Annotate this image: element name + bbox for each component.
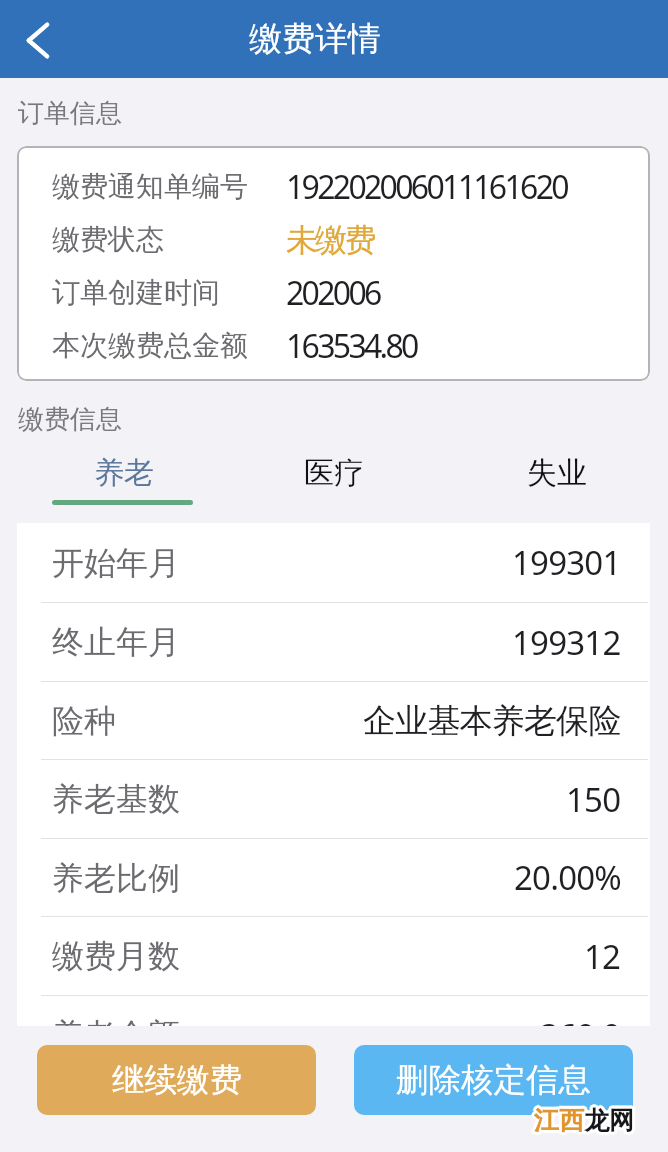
staticText: 失业 <box>527 454 587 492</box>
staticText: 江西龙网 <box>533 1106 633 1137</box>
staticText: 医疗 <box>304 454 364 492</box>
button[interactable]: 养老基数 <box>52 760 615 838</box>
button[interactable]: 终止年月 <box>52 603 615 681</box>
staticText: 江西龙网 <box>536 1105 636 1136</box>
staticText: 20.00% <box>514 855 621 900</box>
staticText: 江西 <box>534 1105 584 1136</box>
staticText: 江西龙网 <box>532 1107 632 1138</box>
staticText: 缴费详情 <box>249 18 381 60</box>
staticText: 江西龙网 <box>536 1107 636 1138</box>
staticText: 缴费月数 <box>52 936 180 976</box>
staticText: 江西龙网 <box>533 1105 633 1136</box>
staticText: 江西龙网 <box>532 1105 632 1136</box>
staticText: 江西龙网 <box>534 1106 634 1137</box>
staticText: 删除核定信息 <box>396 1060 591 1101</box>
staticText: 江西龙网 <box>531 1105 631 1136</box>
button[interactable]: 开始年月 <box>52 523 615 602</box>
staticText: 养老比例 <box>52 858 180 898</box>
staticText: 江西龙网 <box>535 1105 635 1136</box>
button[interactable]: 继续缴费 <box>37 1045 316 1115</box>
button[interactable]: 失业 <box>445 449 668 523</box>
staticText: 江西龙网 <box>536 1103 636 1134</box>
staticText: 江西龙网 <box>536 1106 636 1137</box>
staticText: 江西龙网 <box>532 1104 632 1135</box>
staticText: 江西龙网 <box>534 1102 634 1133</box>
staticText: 163534.80 <box>286 324 417 368</box>
staticText: 养老基数 <box>52 779 180 819</box>
staticText: 未缴费 <box>286 220 374 260</box>
button[interactable]: 养老金额 <box>52 996 615 1026</box>
staticText: 缴费通知单编号 <box>52 169 284 204</box>
staticText: 养老金额 <box>52 1015 180 1026</box>
staticText: 江西龙网 <box>532 1103 632 1134</box>
staticText: 终止年月 <box>52 622 180 662</box>
staticText: 江西龙网 <box>534 1107 634 1138</box>
staticText: 江西龙网 <box>534 1104 634 1135</box>
staticText: 江西龙网 <box>535 1104 635 1135</box>
staticText: 江西龙网 <box>535 1106 635 1137</box>
button[interactable]: Back <box>8 9 68 69</box>
staticText: 江西龙网 <box>535 1107 635 1138</box>
staticText: 继续缴费 <box>112 1060 242 1101</box>
staticText: 199301 <box>512 540 621 585</box>
button[interactable]: 缴费月数 <box>52 917 615 995</box>
staticText: 养老 <box>94 454 154 492</box>
staticText: 企业基本养老保险 <box>363 700 621 742</box>
button[interactable]: 删除核定信息 <box>354 1045 633 1115</box>
staticText: 江西龙网 <box>532 1106 632 1137</box>
staticText: 360.0 <box>540 1013 621 1026</box>
staticText: 150 <box>566 777 621 822</box>
button[interactable]: 险种 <box>52 682 615 759</box>
staticText: 199312 <box>512 620 621 665</box>
staticText: 订单创建时间 <box>52 275 284 310</box>
staticText: 江西龙网 <box>536 1104 636 1135</box>
button[interactable]: 养老比例 <box>52 839 615 916</box>
staticText: 江西龙网 <box>533 1103 633 1134</box>
staticText: 缴费信息 <box>18 403 122 436</box>
staticText: 订单信息 <box>18 97 122 130</box>
staticText: 192202006011161620 <box>286 165 567 209</box>
staticText: 本次缴费总金额 <box>52 328 284 363</box>
staticText: 缴费状态 <box>52 222 284 257</box>
staticText: 江西龙网 <box>534 1108 634 1139</box>
button[interactable]: 养老 <box>0 449 222 523</box>
staticText: 江西龙网 <box>533 1104 633 1135</box>
button[interactable]: 医疗 <box>222 449 445 523</box>
staticText: 江西龙网 <box>533 1107 633 1138</box>
staticText: 12 <box>584 934 621 979</box>
staticText: 江西龙网 <box>535 1103 635 1134</box>
staticText: 江西龙网 <box>534 1103 634 1134</box>
staticText: 202006 <box>286 271 380 315</box>
staticText: 险种 <box>52 701 116 741</box>
staticText: 龙网 <box>584 1105 634 1136</box>
staticText: 江西龙网 <box>537 1105 637 1136</box>
staticText: 开始年月 <box>52 543 180 583</box>
